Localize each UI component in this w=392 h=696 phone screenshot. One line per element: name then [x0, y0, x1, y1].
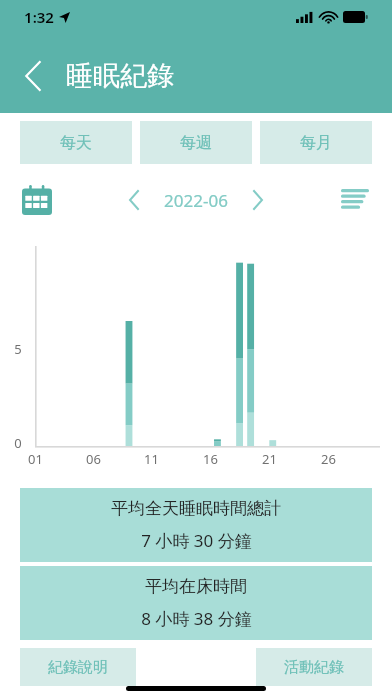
staticText: 平均在床時間	[145, 576, 247, 597]
button[interactable]: 每月	[260, 121, 372, 164]
staticText: 每月	[300, 133, 332, 153]
button[interactable]: 平均全天睡眠時間總計	[20, 488, 372, 562]
button[interactable]: 平均在床時間	[20, 566, 372, 640]
staticText: 0	[14, 434, 22, 452]
staticText: 16	[203, 450, 218, 468]
staticText: 1:32	[24, 7, 54, 27]
staticText: 睡眠紀錄	[66, 59, 174, 93]
button[interactable]: 每週	[140, 121, 252, 164]
staticText: 平均全天睡眠時間總計	[111, 498, 281, 519]
button[interactable]: 每天	[20, 121, 132, 164]
button[interactable]: Back	[0, 48, 66, 104]
button[interactable]: List	[338, 183, 372, 217]
button[interactable]: Previous month	[116, 182, 152, 218]
staticText: 26	[321, 450, 336, 468]
staticText: 06	[86, 450, 101, 468]
staticText: 21	[262, 450, 277, 468]
staticText: 7 小時 30 分鐘	[141, 529, 252, 552]
button[interactable]: Calendar	[20, 183, 54, 217]
staticText: 活動紀錄	[284, 658, 344, 677]
button[interactable]: 活動紀錄	[256, 648, 372, 686]
staticText: 2022-06	[164, 189, 228, 212]
staticText: 01	[28, 450, 43, 468]
staticText: 5	[14, 340, 22, 358]
staticText: 8 小時 38 分鐘	[141, 607, 252, 630]
button[interactable]: Next month	[240, 182, 276, 218]
staticText: 紀錄說明	[48, 658, 108, 677]
staticText: 每天	[60, 133, 92, 153]
staticText: 每週	[180, 133, 212, 153]
staticText: 11	[144, 450, 159, 468]
button[interactable]: 紀錄說明	[20, 648, 136, 686]
